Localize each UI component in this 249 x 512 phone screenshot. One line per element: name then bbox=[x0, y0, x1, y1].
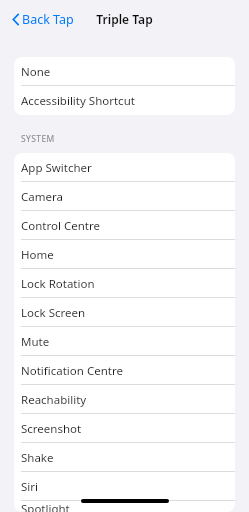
staticText: Triple Tap bbox=[96, 11, 153, 27]
button[interactable]: Spotlight bbox=[14, 501, 235, 512]
button[interactable]: Back Tap bbox=[10, 7, 76, 32]
staticText: Siri bbox=[21, 479, 38, 495]
button[interactable]: Accessibility Shortcut bbox=[14, 86, 235, 115]
button[interactable]: Camera bbox=[14, 182, 235, 211]
staticText: Shake bbox=[21, 450, 54, 466]
button[interactable]: Home bbox=[14, 240, 235, 269]
staticText: App Switcher bbox=[21, 160, 92, 176]
staticText: Spotlight bbox=[21, 501, 70, 512]
staticText: Camera bbox=[21, 189, 63, 205]
staticText: Lock Rotation bbox=[21, 276, 95, 292]
button[interactable]: Reachability bbox=[14, 385, 235, 414]
staticText: SYSTEM bbox=[21, 133, 55, 145]
staticText: Screenshot bbox=[21, 421, 82, 437]
staticText: Accessibility Shortcut bbox=[21, 93, 135, 109]
staticText: Home bbox=[21, 247, 54, 263]
button[interactable]: App Switcher bbox=[14, 153, 235, 182]
staticText: None bbox=[21, 64, 51, 80]
button[interactable]: Screenshot bbox=[14, 414, 235, 443]
button[interactable]: Notification Centre bbox=[14, 356, 235, 385]
button[interactable]: None bbox=[14, 57, 235, 86]
staticText: Reachability bbox=[21, 392, 87, 408]
staticText: Lock Screen bbox=[21, 305, 86, 321]
staticText: Back Tap bbox=[22, 11, 74, 28]
button[interactable]: Lock Screen bbox=[14, 298, 235, 327]
staticText: Control Centre bbox=[21, 218, 100, 234]
button[interactable]: Mute bbox=[14, 327, 235, 356]
staticText: Mute bbox=[21, 334, 50, 350]
staticText: Notification Centre bbox=[21, 363, 123, 379]
button[interactable]: Shake bbox=[14, 443, 235, 472]
button[interactable]: Lock Rotation bbox=[14, 269, 235, 298]
button[interactable]: Siri bbox=[14, 472, 235, 501]
button[interactable]: Control Centre bbox=[14, 211, 235, 240]
